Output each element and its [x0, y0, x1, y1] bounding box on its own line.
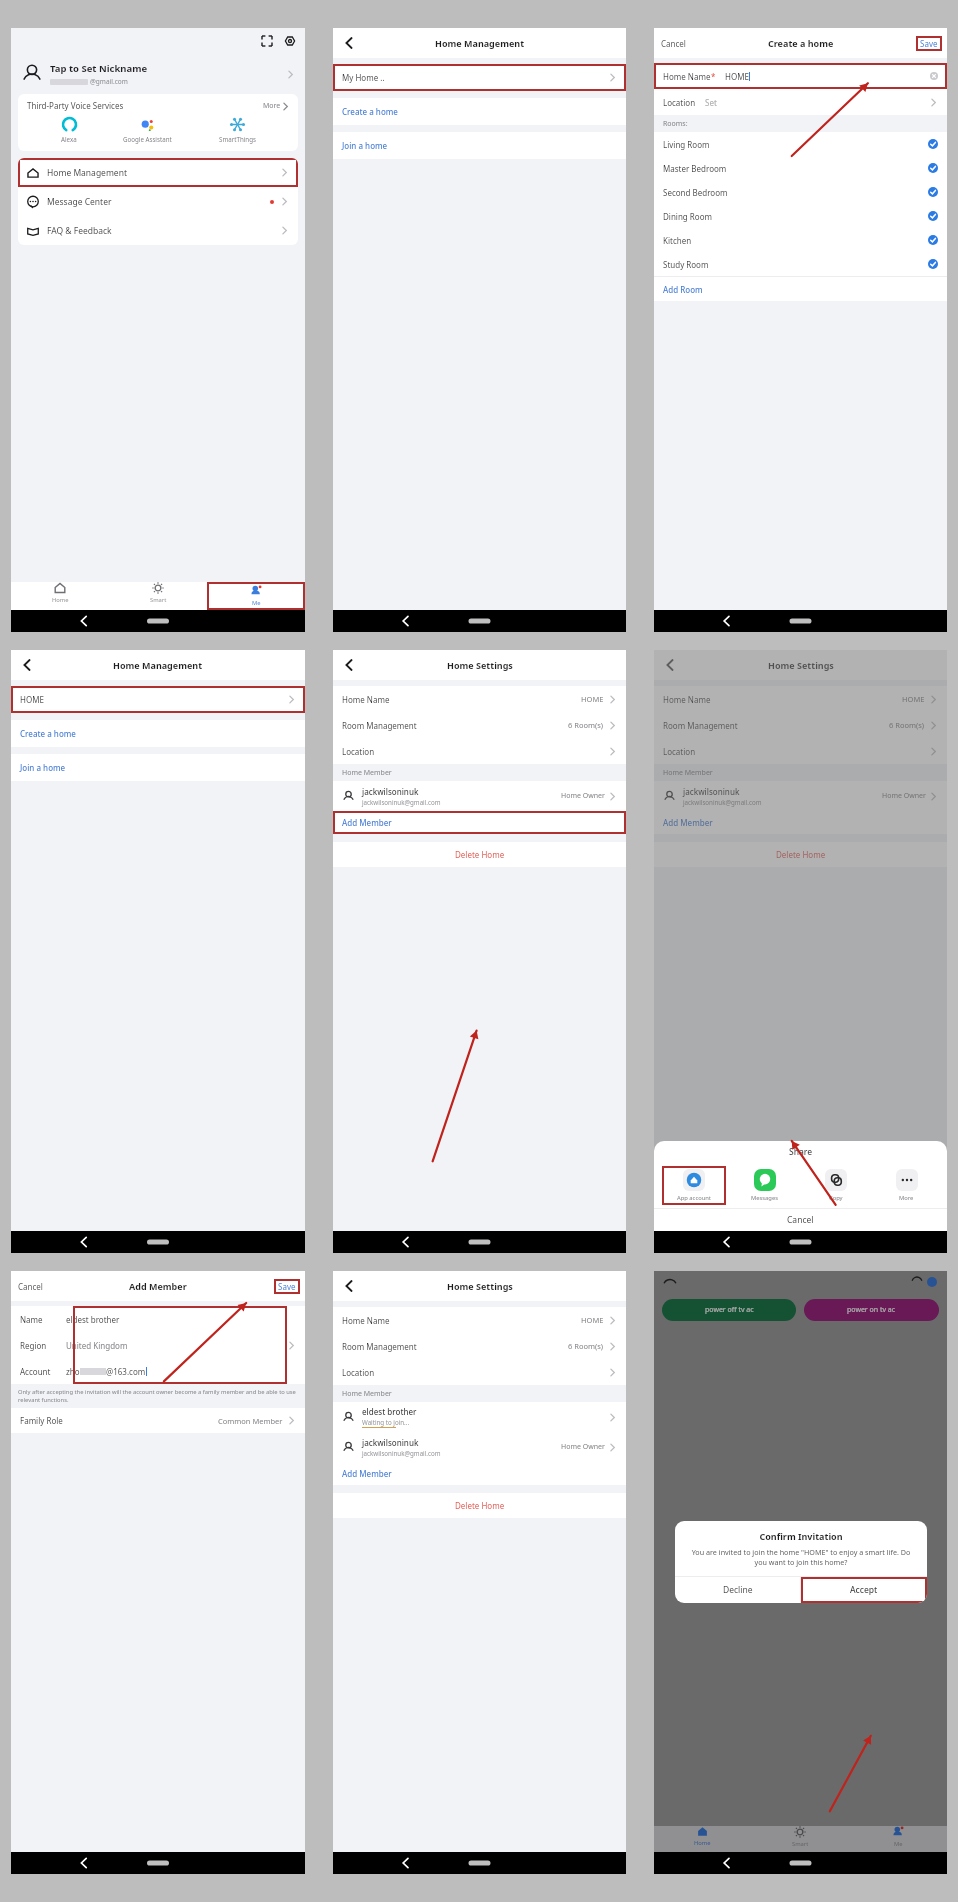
staticText: Delete Home: [455, 849, 505, 860]
button[interactable]: Home Name: [654, 63, 947, 89]
staticText: Name: [20, 1314, 43, 1325]
staticText: Google Assistant: [123, 135, 172, 143]
button[interactable]: Delete Home: [333, 1493, 626, 1518]
button[interactable]: Scan: [260, 34, 274, 48]
button[interactable]: Decline: [675, 1577, 800, 1603]
button[interactable]: Tap to Set Nickname: [11, 54, 305, 94]
staticText: Add Device: [781, 1576, 821, 1586]
button[interactable]: Location: [333, 738, 626, 764]
button[interactable]: Save: [920, 38, 938, 49]
button[interactable]: Name: [11, 1306, 305, 1332]
staticText: Kitchen: [663, 235, 692, 246]
button[interactable]: Add Member: [654, 811, 947, 834]
button[interactable]: HOME: [11, 686, 305, 713]
staticText: Master Bedroom: [663, 163, 727, 174]
button[interactable]: Kitchen: [654, 228, 947, 252]
button[interactable]: Accept: [801, 1577, 927, 1603]
button[interactable]: Me: [207, 582, 305, 610]
button[interactable]: Family Role: [11, 1408, 305, 1433]
button[interactable]: Back: [18, 656, 36, 674]
button[interactable]: Home: [11, 582, 109, 604]
button[interactable]: Add Member: [333, 811, 626, 834]
staticText: Cancel: [18, 1281, 43, 1292]
button[interactable]: Back: [661, 656, 679, 674]
staticText: HOME: [581, 1315, 604, 1325]
staticText: Me: [252, 599, 261, 607]
button[interactable]: Study Room: [654, 252, 947, 276]
button[interactable]: Account: [11, 1358, 305, 1384]
button[interactable]: Back: [340, 1277, 358, 1295]
button[interactable]: Save: [278, 1281, 296, 1292]
button[interactable]: Add Room: [654, 277, 947, 301]
button[interactable]: My Home ..: [333, 64, 626, 91]
button[interactable]: Cancel: [661, 38, 686, 49]
button[interactable]: Home Name: [333, 686, 626, 712]
staticText: Home Name: [342, 694, 390, 705]
staticText: jackwilsoninuk: [362, 1437, 419, 1448]
button[interactable]: jackwilsoninuk: [333, 1432, 626, 1462]
button[interactable]: Add Device: [762, 1571, 840, 1591]
button[interactable]: Room Management: [333, 1333, 626, 1359]
button[interactable]: FAQ & Feedback: [18, 216, 298, 245]
button[interactable]: Settings: [283, 34, 297, 48]
button[interactable]: More: [263, 101, 289, 111]
staticText: You are invited to join the home "HOME" …: [685, 1547, 917, 1567]
button[interactable]: eldest brother: [333, 1402, 626, 1432]
button[interactable]: Back: [340, 34, 358, 52]
staticText: Common Member: [218, 1416, 283, 1426]
button[interactable]: Create a home: [333, 98, 626, 125]
button[interactable]: Second Bedroom: [654, 180, 947, 204]
button[interactable]: SmartThings: [215, 117, 260, 143]
staticText: HOME: [725, 71, 749, 82]
button[interactable]: Home Name: [654, 686, 947, 712]
button[interactable]: Smart: [751, 1826, 849, 1848]
staticText: Home Name: [342, 1315, 390, 1326]
button[interactable]: Location: [654, 89, 947, 115]
button[interactable]: Message Center: [18, 187, 298, 216]
staticText: Region: [20, 1340, 47, 1351]
button[interactable]: Location: [333, 1359, 626, 1385]
staticText: My Home ..: [342, 72, 385, 83]
button[interactable]: Dining Room: [654, 204, 947, 228]
button[interactable]: Room Management: [333, 712, 626, 738]
staticText: United Kingdom: [66, 1340, 128, 1351]
button[interactable]: Back: [340, 656, 358, 674]
button[interactable]: Room Management: [654, 712, 947, 738]
staticText: jackwilsoninuk@gmail.com: [683, 798, 762, 806]
button[interactable]: Messages: [732, 1166, 797, 1205]
button[interactable]: jackwilsoninuk: [654, 781, 947, 811]
button[interactable]: Cancel: [654, 1209, 947, 1231]
button[interactable]: Home: [654, 1826, 751, 1847]
button[interactable]: Home Name: [333, 1307, 626, 1333]
staticText: power off tv ac: [705, 1305, 754, 1315]
button[interactable]: Location: [654, 738, 947, 764]
button[interactable]: Delete Home: [654, 842, 947, 867]
button[interactable]: Master Bedroom: [654, 156, 947, 180]
button[interactable]: power on tv ac: [804, 1299, 939, 1321]
button[interactable]: jackwilsoninuk: [333, 781, 626, 811]
staticText: jackwilsoninuk: [683, 786, 740, 797]
button[interactable]: Region: [11, 1332, 305, 1358]
staticText: Me: [894, 1840, 903, 1848]
button[interactable]: Google Assistant: [119, 117, 176, 143]
button[interactable]: Smart: [109, 582, 207, 604]
button[interactable]: Create a home: [11, 720, 305, 747]
staticText: Home: [52, 596, 69, 604]
button[interactable]: Me: [849, 1826, 947, 1848]
button[interactable]: Delete Home: [333, 842, 626, 867]
staticText: Account: [20, 1366, 51, 1377]
button[interactable]: App account: [662, 1166, 726, 1205]
staticText: Third-Party Voice Services: [27, 100, 124, 111]
button[interactable]: More: [874, 1166, 939, 1205]
staticText: Tap to Set Nickname: [50, 62, 148, 75]
button[interactable]: Living Room: [654, 132, 947, 156]
staticText: Add Member: [663, 817, 713, 828]
button[interactable]: power off tv ac: [662, 1299, 796, 1321]
button[interactable]: Join a home: [11, 754, 305, 781]
button[interactable]: Alexa: [57, 117, 81, 143]
button[interactable]: Home Management: [18, 158, 298, 187]
button[interactable]: Add Member: [333, 1462, 626, 1485]
button[interactable]: Copy: [803, 1166, 868, 1205]
button[interactable]: Join a home: [333, 132, 626, 159]
button[interactable]: Cancel: [18, 1281, 43, 1292]
